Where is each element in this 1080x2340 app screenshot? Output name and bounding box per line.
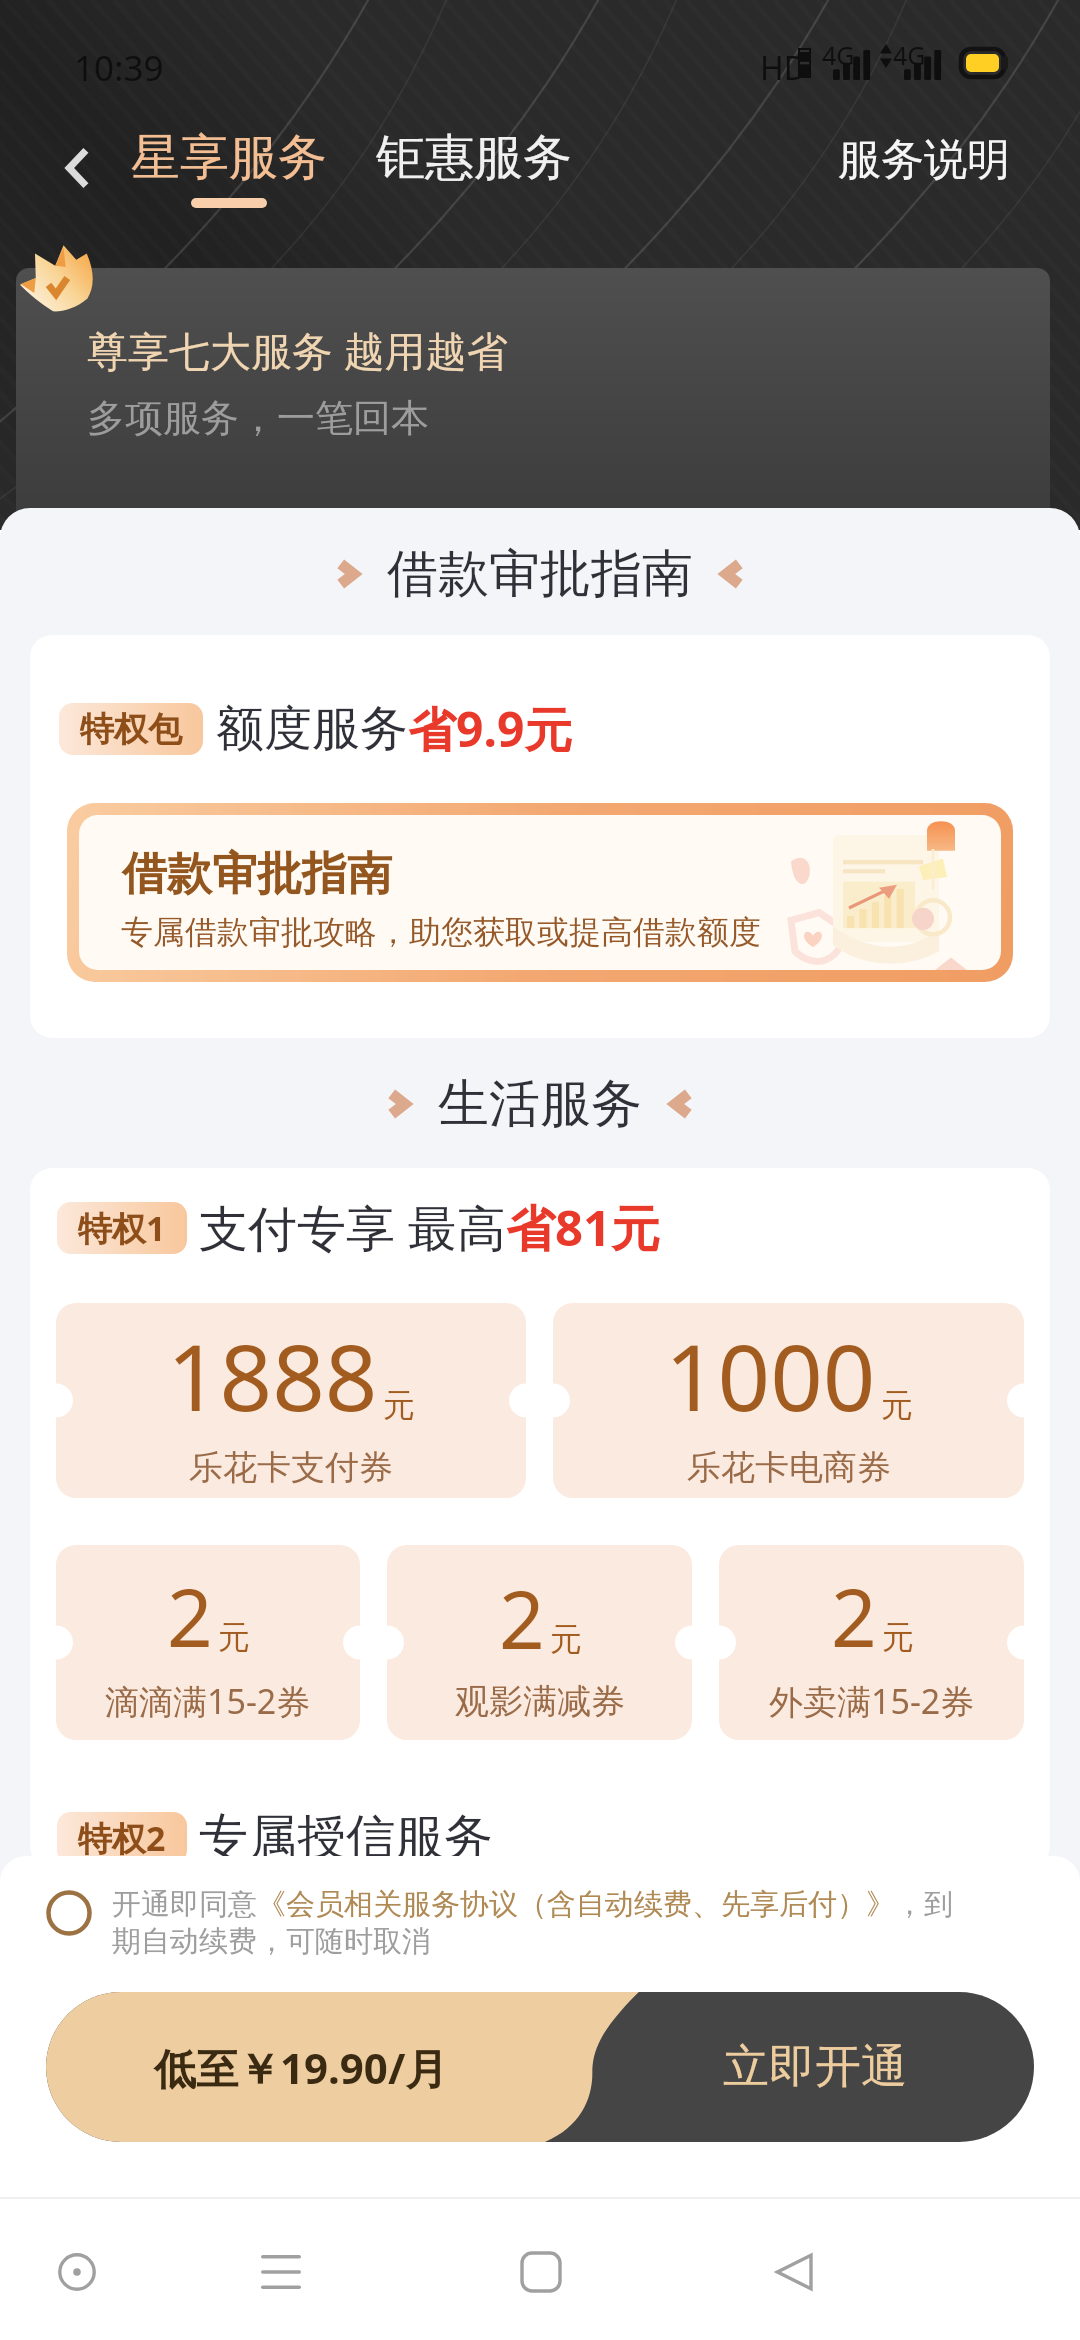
staticText: 元	[882, 1617, 914, 1657]
button[interactable]: 特权1	[30, 1168, 1050, 1868]
staticText: 特权2	[78, 1815, 166, 1861]
button[interactable]: 钜惠服务	[376, 121, 572, 189]
staticText: 特权1	[78, 1205, 166, 1251]
button[interactable]: 尊享七大服务 越用越省	[16, 268, 1050, 513]
staticText: 专属授信服务	[199, 1807, 493, 1868]
button[interactable]: 低至￥19.90/月	[46, 1992, 1034, 2142]
staticText: 立即开通	[723, 2038, 907, 2096]
staticText: 省9.9元	[408, 696, 573, 762]
button[interactable]: Home	[491, 2222, 591, 2322]
staticText: 元	[383, 1385, 415, 1425]
staticText: 钜惠服务	[376, 127, 572, 189]
button[interactable]: 开通即同意《会员相关服务协议（含自动续费、先享后付）》，到	[46, 1886, 1036, 1960]
staticText: 1000	[665, 1313, 876, 1438]
staticText: 元	[218, 1617, 250, 1657]
staticText: 4G	[822, 38, 855, 72]
staticText: 元	[881, 1385, 913, 1425]
button[interactable]: 2	[387, 1545, 692, 1740]
staticText: 专属借款审批攻略，助您获取或提高借款额度	[121, 912, 761, 952]
staticText: 期自动续费，可随时取消	[112, 1923, 431, 1960]
staticText: 1888	[167, 1313, 378, 1438]
staticText: 星享服务	[131, 127, 327, 189]
staticText: 2	[831, 1561, 877, 1670]
button[interactable]: 2	[56, 1545, 360, 1740]
staticText: 2	[167, 1561, 213, 1670]
button[interactable]: 服务说明	[838, 127, 1010, 187]
staticText: 10:39	[74, 44, 164, 92]
staticText: 借款审批指南	[387, 542, 693, 606]
button[interactable]: 2	[719, 1545, 1024, 1740]
staticText: 滴滴满15-2券	[105, 1678, 311, 1724]
staticText: 额度服务	[216, 699, 408, 759]
button[interactable]: 特权包	[30, 635, 1050, 1038]
staticText: 服务说明	[838, 133, 1010, 187]
staticText: 借款审批指南	[122, 846, 392, 903]
button[interactable]: Back	[745, 2222, 845, 2322]
staticText: 特权包	[80, 708, 182, 751]
button[interactable]: 借款审批指南	[67, 803, 1013, 982]
button[interactable]: Back	[42, 132, 114, 204]
staticText: 外卖满15-2券	[769, 1678, 975, 1724]
staticText: 元	[550, 1619, 582, 1659]
staticText: 乐花卡电商券	[687, 1446, 891, 1489]
button[interactable]: 1888	[56, 1303, 526, 1498]
staticText: 乐花卡支付券	[189, 1446, 393, 1489]
staticText: 多项服务，一笔回本	[87, 394, 429, 442]
staticText: 观影满减券	[455, 1680, 625, 1723]
staticText: 生活服务	[438, 1072, 642, 1136]
button[interactable]: Recents	[231, 2222, 331, 2322]
button[interactable]: 星享服务	[131, 121, 327, 208]
button[interactable]: Assistant	[27, 2222, 127, 2322]
staticText: 开通即同意《会员相关服务协议（含自动续费、先享后付）》，到	[112, 1886, 953, 1923]
staticText: 支付专享 最高	[199, 1194, 506, 1261]
staticText: 4G	[893, 38, 926, 72]
staticText: 2	[499, 1563, 545, 1672]
staticText: HD	[760, 46, 808, 90]
button[interactable]: 1000	[553, 1303, 1024, 1498]
staticText: 省81元	[506, 1194, 661, 1261]
staticText: 尊享七大服务 越用越省	[87, 322, 508, 378]
staticText: 低至￥19.90/月	[154, 2039, 448, 2096]
